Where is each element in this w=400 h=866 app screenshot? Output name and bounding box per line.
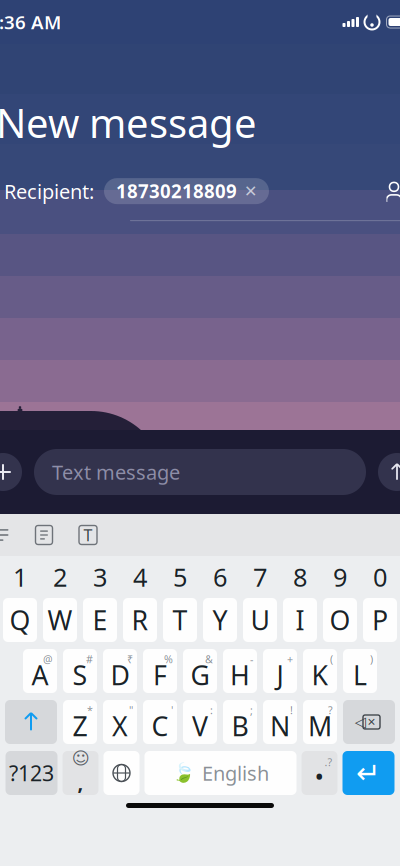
button[interactable]: Menu (0, 517, 22, 553)
staticText: J (276, 657, 283, 693)
button[interactable]: 6 (200, 560, 240, 594)
button[interactable]: 0 (360, 560, 400, 594)
button[interactable]: Send (378, 453, 400, 491)
button[interactable]: Add attachment (0, 453, 22, 491)
button[interactable]: T (163, 598, 197, 642)
staticText: ◁ (355, 714, 366, 730)
staticText: 4 (133, 560, 147, 594)
staticText: New message (0, 96, 257, 149)
button[interactable]: Period (301, 751, 337, 795)
button[interactable]: ₹ (103, 649, 137, 693)
staticText: ↵ (356, 756, 381, 790)
button[interactable]: + (263, 649, 297, 693)
staticText: # (86, 652, 93, 666)
staticText: I (295, 602, 304, 638)
button[interactable]: I (283, 598, 317, 642)
button[interactable]: Backspace (343, 700, 395, 744)
button[interactable]: : (183, 700, 217, 744)
staticText: T (172, 602, 187, 638)
button[interactable]: Shift (5, 700, 57, 744)
staticText: L (353, 657, 367, 693)
staticText: , (77, 769, 83, 796)
button[interactable]: & (183, 649, 217, 693)
button[interactable]: ?123 (5, 751, 57, 795)
button[interactable]: 2 (40, 560, 80, 594)
button[interactable]: W (43, 598, 77, 642)
button[interactable]: 8 (280, 560, 320, 594)
staticText: " (129, 703, 133, 717)
staticText: Recipient: (4, 178, 94, 204)
button[interactable]: - (223, 649, 257, 693)
staticText: V (192, 708, 208, 744)
button[interactable]: E (83, 598, 117, 642)
button[interactable]: ( (303, 649, 337, 693)
staticText: 8 (293, 560, 307, 594)
button[interactable]: Q (3, 598, 37, 642)
button[interactable]: Choose contact (372, 171, 400, 211)
button[interactable]: U (243, 598, 277, 642)
staticText: 🍃 (172, 762, 195, 784)
button[interactable]: Y (203, 598, 237, 642)
button[interactable]: 1 (0, 560, 40, 594)
staticText: O (329, 602, 350, 638)
staticText: ' (171, 703, 173, 717)
button[interactable]: @ (23, 649, 57, 693)
staticText: T (83, 524, 92, 546)
button[interactable]: 3 (80, 560, 120, 594)
staticText: R (131, 602, 148, 638)
button[interactable]: Return (342, 751, 394, 795)
staticText: C (151, 708, 168, 744)
staticText: D (110, 657, 129, 693)
button[interactable]: 4 (120, 560, 160, 594)
button[interactable]: # (63, 649, 97, 693)
button[interactable]: % (143, 649, 177, 693)
staticText: 2:36 AM (0, 10, 61, 34)
staticText: ✕ (244, 182, 257, 200)
button[interactable]: 18730218809 (104, 178, 269, 204)
staticText: + (287, 652, 293, 666)
button[interactable]: 7 (240, 560, 280, 594)
button[interactable]: ? (303, 700, 337, 744)
staticText: 0 (373, 560, 387, 594)
button[interactable]: Emoji and comma (62, 751, 98, 795)
staticText: N (270, 708, 290, 744)
button[interactable]: ) (343, 649, 377, 693)
staticText: % (164, 652, 173, 666)
staticText: * (87, 703, 93, 717)
button[interactable]: Text formatting (66, 517, 110, 553)
staticText: Text message (52, 459, 180, 485)
staticText: G (190, 657, 209, 693)
staticText: ✕ (367, 716, 376, 728)
staticText: ! (290, 703, 293, 717)
button[interactable]: 5 (160, 560, 200, 594)
button[interactable]: R (123, 598, 157, 642)
staticText: 1 (13, 560, 27, 594)
button[interactable]: ' (143, 700, 177, 744)
staticText: 6 (213, 560, 227, 594)
staticText: : (210, 703, 213, 717)
staticText: Y (212, 602, 227, 638)
button[interactable]: Space (144, 751, 296, 795)
staticText: & (205, 652, 213, 666)
staticText: 18730218809 (116, 179, 237, 203)
staticText: @ (43, 652, 53, 666)
staticText: Q (9, 602, 30, 638)
button[interactable]: ! (263, 700, 297, 744)
button[interactable]: ; (223, 700, 257, 744)
staticText: ; (250, 703, 253, 717)
button[interactable]: O (323, 598, 357, 642)
staticText: 2 (53, 560, 67, 594)
staticText: X (112, 708, 128, 744)
button[interactable]: * (63, 700, 97, 744)
button[interactable]: P (363, 598, 397, 642)
staticText: A (31, 657, 48, 693)
button[interactable]: " (103, 700, 137, 744)
button[interactable]: Switch language (103, 751, 139, 795)
staticText: ₹ (127, 652, 133, 666)
button[interactable]: 9 (320, 560, 360, 594)
staticText: 3 (93, 560, 107, 594)
button[interactable]: Text message (34, 449, 366, 495)
button[interactable]: Clipboard (22, 517, 66, 553)
staticText: E (92, 602, 107, 638)
